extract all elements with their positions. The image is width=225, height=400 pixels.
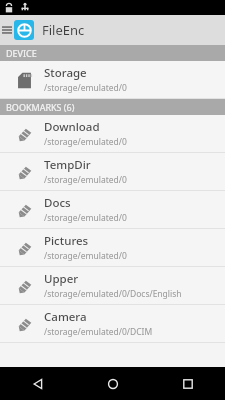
staticText: /storage/emulated/0 [44, 174, 127, 186]
staticText: Upper [44, 271, 79, 287]
staticText: /storage/emulated/0 [44, 136, 127, 148]
staticText: Pictures [44, 233, 89, 249]
staticText: /storage/emulated/0/DCIM [44, 326, 153, 338]
staticText: /storage/emulated/0 [44, 250, 127, 262]
staticText: /storage/emulated/0 [44, 82, 127, 94]
button[interactable]: Back [0, 367, 75, 400]
staticText: FileEnc [42, 21, 85, 39]
staticText: DEVICE [6, 47, 37, 59]
button[interactable]: Recent apps [150, 367, 225, 400]
button[interactable]: Docs [0, 191, 225, 228]
button[interactable]: Download [0, 115, 225, 152]
staticText: /storage/emulated/0 [44, 212, 127, 224]
button[interactable]: Upper [0, 267, 225, 304]
button[interactable]: Pictures [0, 229, 225, 266]
staticText: Docs [44, 195, 71, 211]
button[interactable]: TempDir [0, 153, 225, 190]
button[interactable]: Home [75, 367, 150, 400]
button[interactable]: Storage [0, 61, 225, 98]
staticText: Storage [44, 65, 87, 81]
button[interactable]: Camera [0, 305, 225, 342]
staticText: TempDir [44, 157, 91, 173]
staticText: /storage/emulated/0/Docs/English [44, 288, 182, 300]
staticText: Camera [44, 309, 87, 325]
staticText: Download [44, 119, 100, 135]
button[interactable]: FileEnc app icon [14, 20, 34, 40]
staticText: BOOKMARKS (6) [6, 101, 75, 113]
button[interactable]: Open navigation drawer [0, 15, 14, 45]
